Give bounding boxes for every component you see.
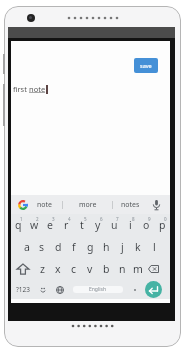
button[interactable] <box>11 195 28 214</box>
button[interactable] <box>146 258 170 280</box>
button[interactable] <box>130 280 146 299</box>
staticText: English <box>89 286 107 293</box>
staticText: 8 <box>132 216 135 222</box>
staticText: 2 <box>36 216 39 222</box>
button[interactable]: j <box>114 236 130 258</box>
button[interactable]: o <box>138 214 154 236</box>
staticText: e <box>47 218 53 232</box>
button[interactable]: English <box>73 286 123 293</box>
staticText: u <box>111 218 118 232</box>
staticText: i <box>129 218 132 232</box>
button[interactable] <box>146 280 170 299</box>
staticText: n <box>119 262 126 276</box>
staticText: ?123 <box>16 285 30 294</box>
button[interactable]: ?123 <box>11 280 34 299</box>
button[interactable]: w <box>26 214 42 236</box>
button[interactable]: m <box>130 258 146 280</box>
button[interactable]: u <box>106 214 122 236</box>
staticText: a <box>24 240 30 254</box>
staticText: t <box>80 218 84 232</box>
button[interactable]: x <box>50 258 66 280</box>
staticText: y <box>95 218 101 232</box>
staticText: 9 <box>148 216 151 222</box>
staticText: g <box>87 240 94 254</box>
staticText: k <box>135 240 141 254</box>
button[interactable]: a <box>19 236 34 258</box>
staticText: m <box>133 262 143 276</box>
staticText: o <box>143 218 150 232</box>
staticText: note <box>37 200 53 210</box>
button[interactable]: note <box>28 195 62 214</box>
staticText: s <box>39 240 45 254</box>
button[interactable]: k <box>130 236 146 258</box>
button[interactable]: i <box>122 214 138 236</box>
staticText: p <box>159 218 166 232</box>
button[interactable]: notes <box>113 195 148 214</box>
staticText: l <box>153 240 156 254</box>
staticText: notes <box>121 200 140 210</box>
button[interactable]: h <box>98 236 114 258</box>
staticText: 4 <box>68 216 71 222</box>
staticText: j <box>121 240 124 254</box>
staticText: 5 <box>84 216 87 222</box>
button[interactable]: e <box>42 214 58 236</box>
button[interactable]: n <box>114 258 130 280</box>
staticText: 0 <box>164 216 167 222</box>
staticText: x <box>55 262 61 276</box>
staticText: w <box>30 218 39 232</box>
button[interactable]: l <box>146 236 162 258</box>
staticText: 6 <box>100 216 103 222</box>
staticText: z <box>40 262 45 276</box>
button[interactable]: f <box>66 236 82 258</box>
button[interactable]: g <box>82 236 98 258</box>
button[interactable]: t <box>74 214 90 236</box>
button[interactable]: q <box>11 214 26 236</box>
button[interactable]: b <box>98 258 114 280</box>
button[interactable]: v <box>82 258 98 280</box>
button[interactable]: save <box>134 58 158 73</box>
staticText: r <box>64 218 69 232</box>
staticText: c <box>71 262 77 276</box>
staticText: v <box>87 262 93 276</box>
button[interactable] <box>148 195 170 214</box>
staticText: f <box>72 240 76 254</box>
button[interactable] <box>11 258 34 280</box>
button[interactable]: r <box>58 214 74 236</box>
staticText: q <box>15 218 22 232</box>
button[interactable] <box>50 280 66 299</box>
staticText: first <box>13 84 29 94</box>
button[interactable]: p <box>154 214 170 236</box>
button[interactable]: z <box>34 258 50 280</box>
staticText: b <box>103 262 110 276</box>
button[interactable]: y <box>90 214 106 236</box>
staticText: 1 <box>20 216 23 222</box>
button[interactable]: more <box>63 195 112 214</box>
button[interactable]: c <box>66 258 82 280</box>
button[interactable]: d <box>50 236 66 258</box>
staticText: d <box>55 240 62 254</box>
staticText: more <box>79 200 97 210</box>
button[interactable] <box>34 280 50 299</box>
staticText: 7 <box>116 216 119 222</box>
staticText: 3 <box>52 216 55 222</box>
button[interactable]: s <box>34 236 50 258</box>
staticText: note <box>29 84 46 94</box>
staticText: h <box>103 240 110 254</box>
staticText: save <box>140 62 152 69</box>
